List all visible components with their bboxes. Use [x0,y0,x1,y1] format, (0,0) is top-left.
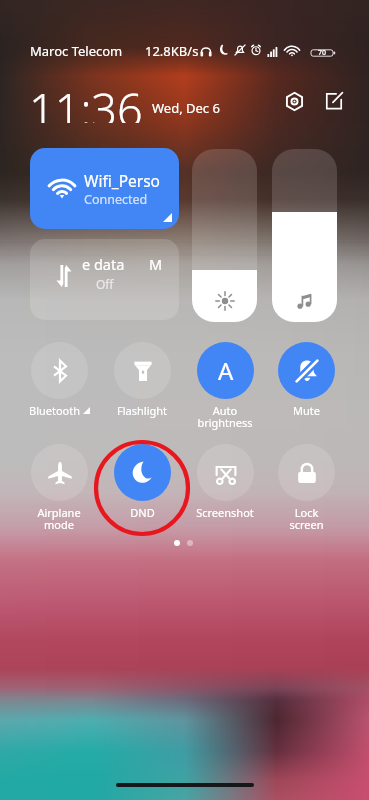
staticText: 12.8KB/s [145,42,199,60]
staticText: Maroc Telecom [30,42,123,60]
staticText: Mute [293,403,320,418]
staticText: M [149,254,163,274]
button[interactable]: DND [101,444,183,520]
staticText: A [218,354,234,387]
staticText: Wed, Dec 6 [152,99,220,117]
button[interactable]: Volume [272,149,337,322]
staticText: Bluetooth [29,403,81,418]
button[interactable]: Brightness [192,149,257,322]
staticText: Flashlight [117,403,167,418]
button[interactable]: A [184,342,266,430]
staticText: Airplane mode [37,505,81,532]
button[interactable]: Flashlight [101,342,183,418]
button[interactable]: Bluetooth [18,342,100,418]
staticText: DND [130,505,155,520]
button[interactable]: Screenshot [184,444,266,520]
staticText: 70 [318,48,327,58]
button[interactable]: Settings [279,86,309,116]
button[interactable]: Mute [265,342,347,418]
staticText: 11:36 [29,79,143,123]
staticText: Wifi_Perso [84,170,160,191]
staticText: Lock screen [289,505,324,532]
button[interactable]: Edit [319,86,349,116]
button[interactable]: e data [30,239,179,320]
staticText: e data [82,254,125,274]
staticText: Off [96,276,114,292]
staticText: Connected [84,191,148,208]
staticText: Screenshot [196,505,254,520]
staticText: Auto brightness [197,403,253,430]
button[interactable]: Airplane mode [18,444,100,532]
button[interactable]: Wifi_Perso [30,148,179,229]
button[interactable]: Lock screen [265,444,347,532]
